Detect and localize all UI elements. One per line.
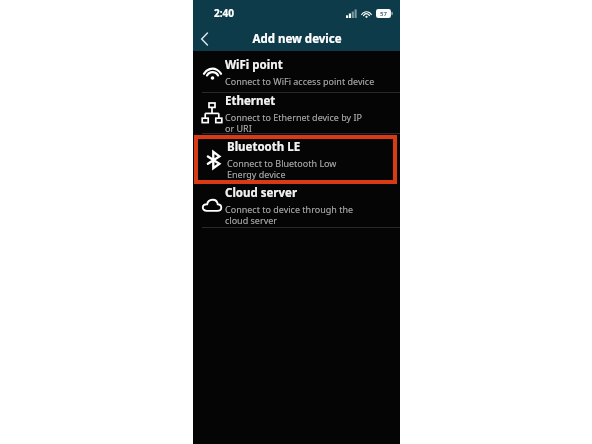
- button[interactable]: Back: [193, 28, 215, 50]
- staticText: Connect to Ethernet device by IP or URI: [225, 111, 362, 133]
- button[interactable]: Ethernet: [193, 93, 400, 133]
- staticText: Connect to device through the cloud serv…: [225, 203, 354, 227]
- staticText: 57: [380, 10, 387, 18]
- staticText: WiFi point: [225, 57, 283, 73]
- staticText: Add new device: [252, 31, 342, 47]
- staticText: Connect to Bluetooth Low Energy device: [227, 157, 337, 181]
- staticText: Cloud server: [225, 185, 298, 201]
- button[interactable]: Cloud server: [193, 185, 400, 227]
- button[interactable]: WiFi point: [193, 51, 400, 92]
- staticText: Connect to WiFi access point device: [225, 75, 375, 87]
- staticText: Ethernet: [225, 93, 276, 109]
- staticText: 2:40: [214, 6, 234, 20]
- button[interactable]: Bluetooth LE: [194, 135, 397, 184]
- staticText: Bluetooth LE: [227, 139, 301, 155]
